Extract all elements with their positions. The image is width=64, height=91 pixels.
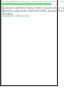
staticText: Quisque sodales massa lorem ipsum dolor … xyxy=(2,6,64,10)
staticText: Vestibul xyxy=(2,12,13,16)
staticText: Aenean vulputate eleifend tellus aenean … xyxy=(2,9,64,13)
staticText: Lorem ipsum dolor sit amet consectetur a… xyxy=(2,0,64,3)
staticText: Curabitur ullamcorp xyxy=(2,14,30,18)
